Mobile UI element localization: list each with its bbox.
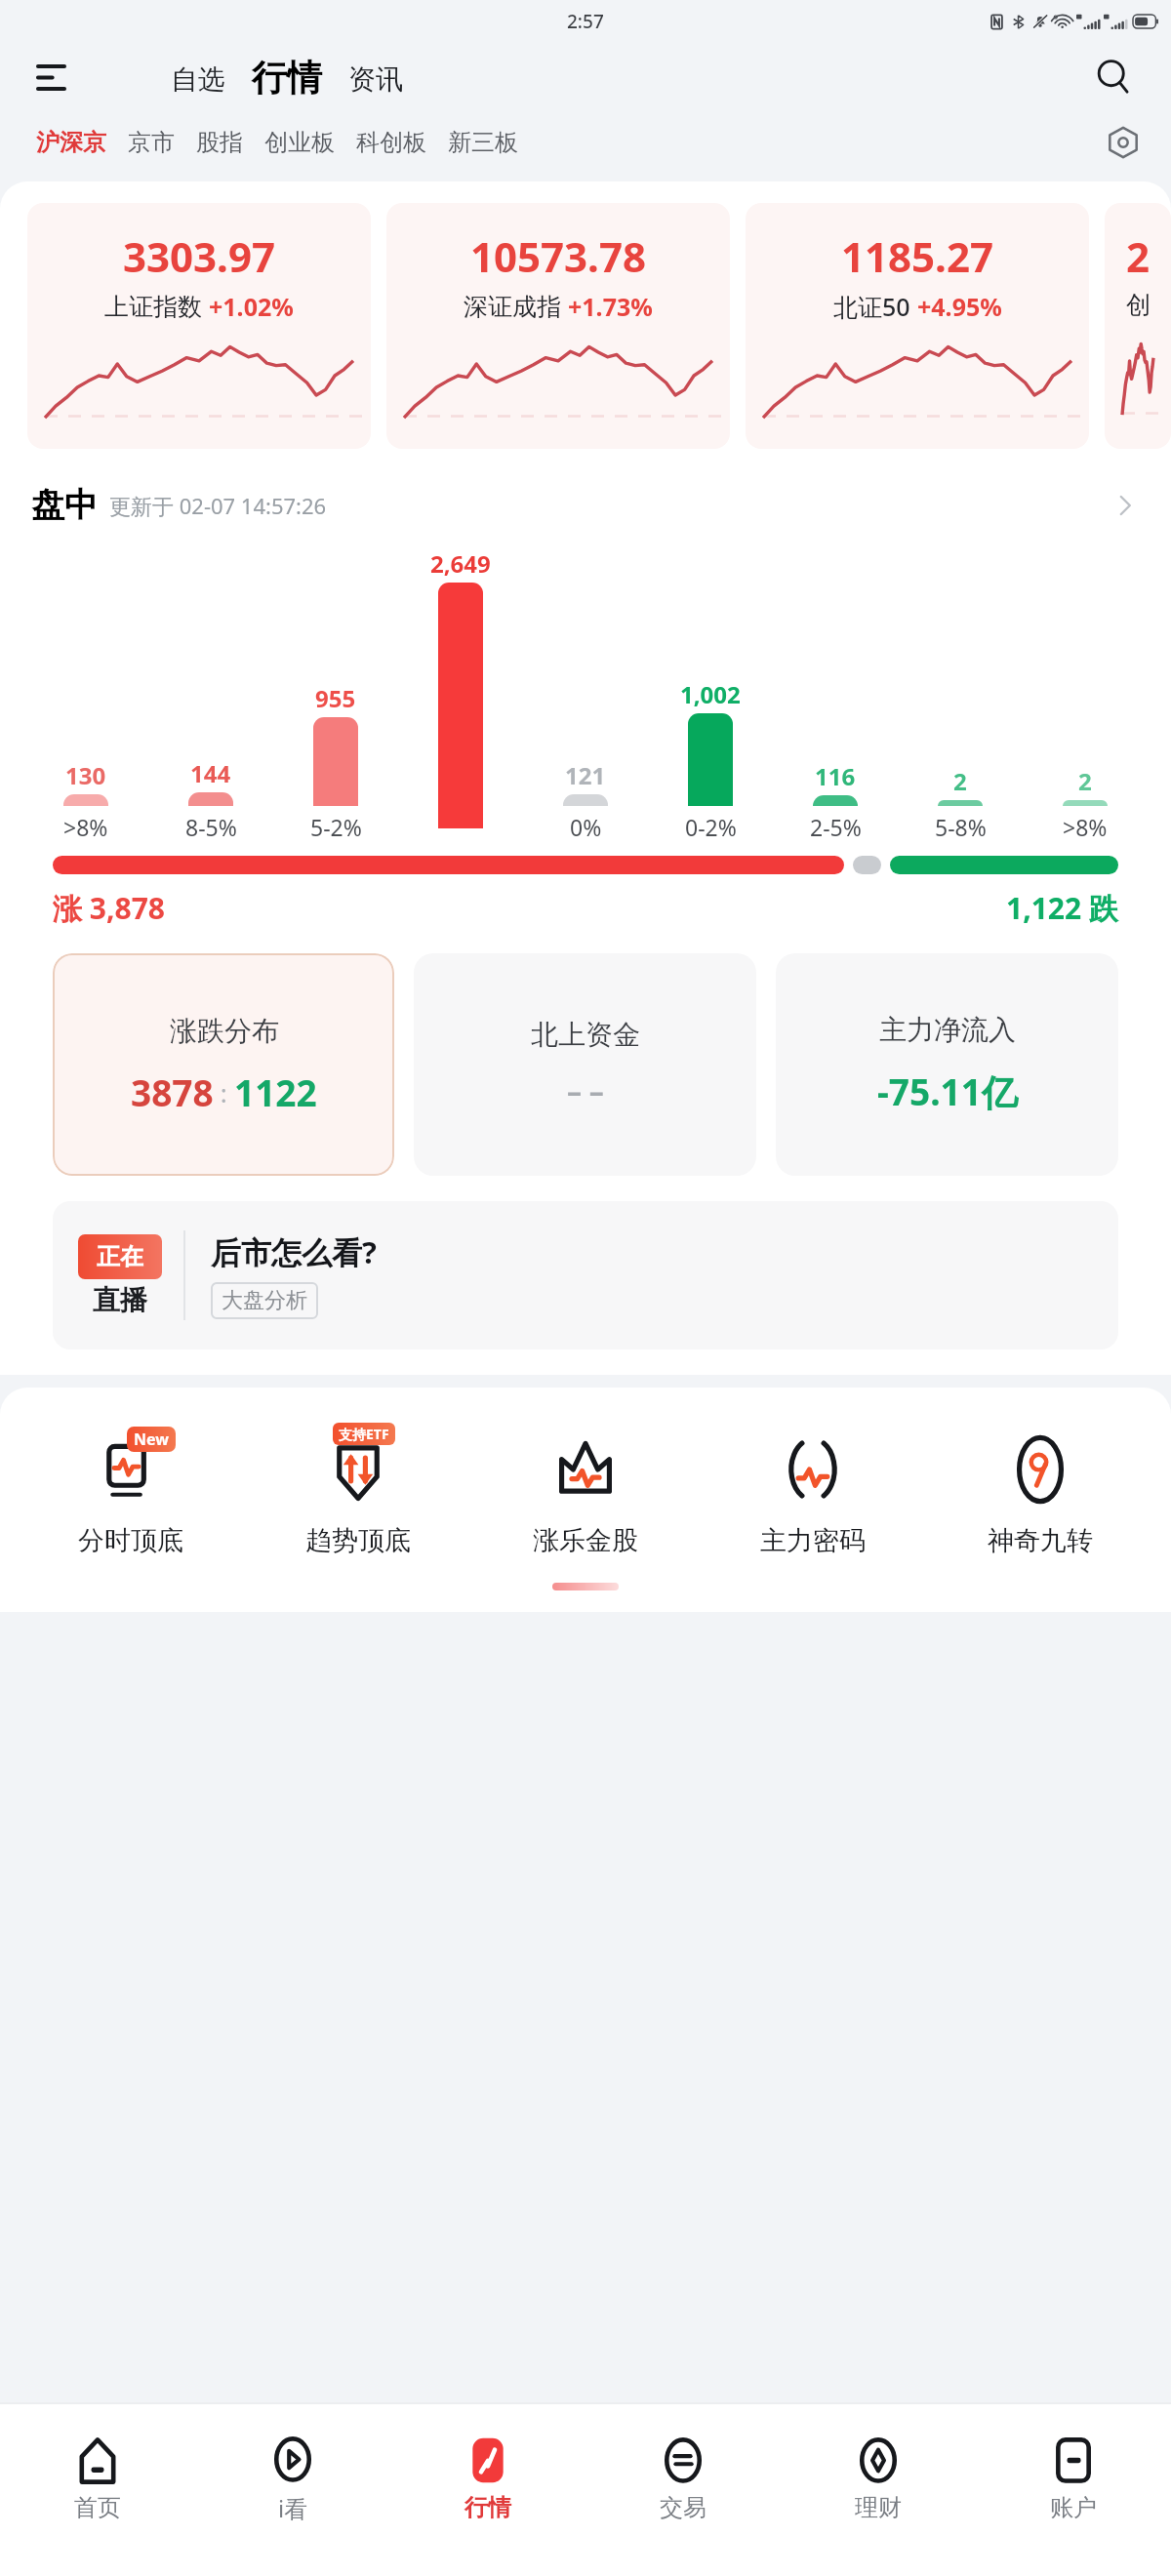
staticText: 1122 (234, 1067, 317, 1116)
staticText: -75.11亿 (877, 1067, 1018, 1116)
button[interactable]: Customize tabs (1095, 114, 1151, 171)
staticText: +1.73% (568, 290, 653, 323)
staticText: 创业板 (264, 128, 335, 157)
staticText: 涨乐金股 (533, 1524, 638, 1557)
staticText: 116 (815, 760, 856, 792)
button[interactable]: 正在 (53, 1201, 1118, 1349)
button[interactable]: 新三板 (437, 121, 529, 164)
staticText: 行情 (252, 56, 322, 100)
staticText: 京市 (128, 128, 175, 157)
staticText: 新三板 (448, 128, 518, 157)
staticText: 0% (570, 812, 602, 842)
staticText: 主力净流入 (879, 1013, 1016, 1047)
staticText: 北上资金 (531, 1018, 640, 1052)
staticText: – – (567, 1071, 604, 1111)
button[interactable]: 神奇九转 (926, 1419, 1153, 1559)
staticText: +4.95% (917, 290, 1002, 323)
button[interactable]: 10573.78 (386, 203, 730, 449)
staticText: 121 (565, 759, 606, 791)
staticText: 2 (953, 765, 967, 797)
staticText: 3878 (131, 1067, 214, 1116)
button[interactable]: 3303.97 (27, 203, 371, 449)
button[interactable]: 创业板 (254, 121, 345, 164)
staticText: 3303.97 (123, 228, 275, 284)
staticText: 1,002 (680, 678, 741, 710)
button[interactable]: 交易 (585, 2404, 781, 2553)
button[interactable]: 行情 (390, 2404, 585, 2553)
staticText: 首页 (74, 2493, 121, 2522)
button[interactable]: 科创板 (345, 121, 437, 164)
staticText: 10573.78 (470, 228, 646, 284)
staticText: 创 (1126, 290, 1151, 320)
button[interactable]: i看 (195, 2404, 390, 2553)
button[interactable]: 首页 (0, 2404, 195, 2553)
button[interactable]: New (18, 1419, 244, 1559)
staticText: 2:57 (567, 9, 604, 34)
staticText: 盘中 (31, 484, 98, 526)
staticText: 理财 (855, 2493, 902, 2522)
button[interactable]: 沪深京 (25, 121, 117, 164)
staticText: 144 (190, 757, 231, 789)
staticText: 2,649 (430, 547, 491, 580)
button[interactable]: 盘中 (0, 478, 1171, 532)
staticText: 大盘分析 (222, 1287, 307, 1314)
staticText: 分时顶底 (78, 1524, 183, 1557)
staticText: 955 (315, 682, 356, 714)
staticText: 趋势顶底 (305, 1524, 411, 1557)
staticText: 130 (65, 759, 106, 791)
staticText: 神奇九转 (988, 1524, 1093, 1557)
staticText: 2 (1126, 228, 1151, 284)
button[interactable]: 自选 (164, 58, 232, 101)
staticText: 账户 (1050, 2493, 1097, 2522)
button[interactable]: 资讯 (342, 58, 410, 101)
button[interactable]: 涨跌分布 (53, 953, 394, 1176)
staticText: 涨 3,878 (53, 888, 165, 928)
button[interactable]: Menu (25, 52, 76, 102)
button[interactable]: 支持ETF (244, 1419, 471, 1559)
button[interactable]: 股指 (185, 121, 254, 164)
staticText: 资讯 (348, 62, 403, 97)
staticText: >8% (63, 812, 108, 842)
staticText: : (214, 1075, 234, 1109)
button[interactable]: 账户 (976, 2404, 1171, 2553)
staticText: +1.02% (209, 290, 294, 323)
staticText: 5-8% (935, 812, 987, 842)
staticText: i看 (278, 2492, 308, 2524)
staticText: 1185.27 (841, 228, 993, 284)
staticText: 1,122 跌 (1006, 888, 1118, 928)
button[interactable]: 京市 (117, 121, 185, 164)
staticText: 5-2% (310, 812, 362, 842)
button[interactable]: 2 (1105, 203, 1171, 449)
button[interactable]: 涨乐金股 (471, 1419, 699, 1559)
staticText: 8-5% (185, 812, 237, 842)
button[interactable]: 1185.27 (746, 203, 1089, 449)
staticText: 科创板 (356, 128, 426, 157)
button[interactable]: 理财 (781, 2404, 976, 2553)
staticText: 0-2% (685, 812, 737, 842)
button[interactable]: 主力密码 (699, 1419, 926, 1559)
staticText: 行情 (464, 2493, 511, 2522)
staticText: 支持ETF (339, 1425, 389, 1443)
staticText: 深证成指 (464, 292, 561, 322)
button[interactable]: 主力净流入 (776, 953, 1118, 1176)
staticText: 2 (1078, 765, 1092, 797)
staticText: >8% (1063, 812, 1108, 842)
staticText: 交易 (660, 2493, 707, 2522)
staticText: 2-5% (810, 812, 862, 842)
button[interactable]: 行情 (245, 54, 329, 101)
staticText: 涨跌分布 (170, 1014, 279, 1048)
staticText: 主力密码 (760, 1524, 866, 1557)
button[interactable]: 北上资金 (414, 953, 756, 1176)
staticText: 北证50 (833, 290, 910, 323)
staticText: 上证指数 (104, 292, 202, 322)
staticText: 后市怎么看? (211, 1231, 377, 1272)
staticText: 正在 (97, 1242, 143, 1271)
staticText: 直播 (93, 1283, 147, 1317)
staticText: 股指 (196, 128, 243, 157)
button[interactable]: Search (1085, 49, 1142, 105)
staticText: New (134, 1429, 169, 1450)
staticText: 沪深京 (36, 128, 106, 157)
staticText: 自选 (171, 62, 225, 97)
staticText: 更新于 02-07 14:57:26 (109, 491, 327, 520)
